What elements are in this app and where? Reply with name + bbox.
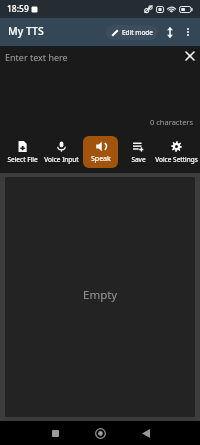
button[interactable]: Select File <box>3 141 42 164</box>
button[interactable]: Home <box>78 421 123 445</box>
button[interactable]: Clear text <box>183 49 197 63</box>
staticText: My TTS <box>8 24 44 38</box>
staticText: Select File <box>7 155 38 164</box>
staticText: Speak <box>91 154 111 164</box>
button[interactable]: Back <box>123 421 168 445</box>
staticText: Voice Settings <box>155 155 198 164</box>
button[interactable]: Speak <box>83 136 118 168</box>
staticText: Empty <box>83 287 118 303</box>
button[interactable]: Edit mode <box>106 25 158 40</box>
button[interactable]: Save <box>119 141 157 164</box>
button[interactable]: Voice Input <box>42 141 81 164</box>
staticText: Enter text here <box>5 51 68 63</box>
button[interactable]: Voice Settings <box>157 141 195 164</box>
button[interactable]: Import and export <box>161 23 179 41</box>
staticText: Edit mode <box>122 28 153 37</box>
staticText: 18:59 <box>7 3 29 15</box>
staticText: Voice Input <box>44 155 79 164</box>
button[interactable]: Recent apps <box>32 421 78 445</box>
staticText: Save <box>131 155 146 164</box>
staticText: 0 characters <box>150 117 194 127</box>
button[interactable]: More options <box>179 23 197 41</box>
